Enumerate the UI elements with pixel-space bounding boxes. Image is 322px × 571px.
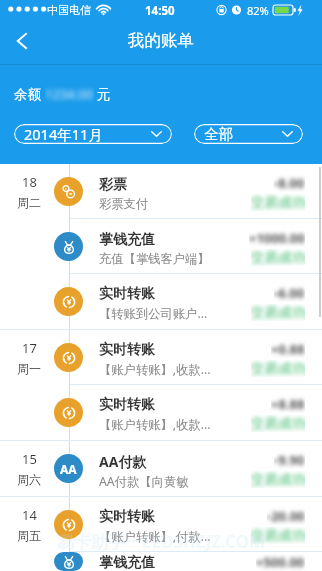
button[interactable]: 实时转账 — [0, 274, 322, 329]
staticText: 全部 — [204, 125, 233, 143]
staticText: 元 — [97, 86, 111, 103]
staticText: 我的账单 — [128, 30, 194, 51]
staticText: 14 — [22, 506, 37, 524]
staticText: 交易成功 — [251, 527, 305, 544]
staticText: 周一 — [17, 361, 41, 376]
staticText: 实时转账 — [99, 341, 155, 359]
button[interactable]: 彩票 — [0, 164, 322, 219]
staticText: 【转账到公司账户... — [99, 305, 208, 322]
staticText: 掌钱充值 — [99, 554, 155, 571]
button[interactable]: 实时转账 — [0, 497, 322, 552]
staticText: +1000.00 — [249, 229, 305, 247]
staticText: 彩票支付 — [99, 196, 149, 211]
button[interactable]: 掌钱充值 — [0, 219, 322, 274]
staticText: 余额 — [14, 86, 42, 103]
staticText: 实时转账 — [99, 396, 155, 414]
staticText: 周六 — [17, 472, 41, 487]
staticText: 掌钱充值 — [99, 231, 155, 249]
button[interactable]: AA — [0, 441, 322, 496]
staticText: 2014年11月 — [24, 124, 103, 144]
staticText: 交易成功 — [251, 360, 305, 377]
staticText: 周五 — [17, 528, 41, 543]
staticText: 交易成功 — [251, 194, 305, 211]
staticText: AA付款 — [99, 452, 147, 471]
staticText: +500.00 — [256, 553, 305, 571]
staticText: 实时转账 — [99, 508, 155, 526]
staticText: -6.00 — [274, 284, 305, 302]
staticText: -8.00 — [274, 174, 305, 192]
staticText: AA — [60, 461, 77, 477]
staticText: 18 — [22, 173, 37, 191]
staticText: -20.00 — [267, 507, 305, 525]
staticText: 实时转账 — [99, 285, 155, 303]
staticText: 充值【掌钱客户端】 — [99, 251, 210, 266]
staticText: 彩票 — [99, 176, 127, 194]
staticText: 【账户转账】,收款... — [99, 416, 211, 433]
staticText: 中国电信 — [47, 3, 91, 17]
staticText: +8.88 — [271, 395, 305, 413]
staticText: 交易成功 — [251, 304, 305, 321]
staticText: 【账户转账】,收款... — [99, 361, 211, 378]
button[interactable]: 全部 — [194, 124, 303, 144]
staticText: 82% — [247, 3, 269, 18]
staticText: 交易成功 — [251, 249, 305, 266]
staticText: +0.88 — [271, 340, 305, 358]
button[interactable]: 实时转账 — [0, 385, 322, 440]
button[interactable]: 实时转账 — [0, 330, 322, 385]
staticText: 1234.00 — [45, 85, 94, 103]
staticText: 交易成功 — [251, 415, 305, 432]
staticText: 15 — [22, 450, 37, 468]
button[interactable]: Back — [0, 20, 44, 61]
staticText: 【账户转账】,付款... — [99, 528, 211, 545]
staticText: 交易成功 — [251, 471, 305, 488]
staticText: 易卡助手一EEDSHZJZ.COM — [57, 530, 266, 553]
staticText: AA付款【向黄敏 — [99, 473, 189, 490]
staticText: 17 — [22, 339, 37, 357]
staticText: -9.90 — [274, 451, 305, 469]
button[interactable]: 2014年11月 — [14, 124, 172, 144]
button[interactable]: 掌钱充值 — [0, 552, 322, 571]
staticText: 周二 — [17, 195, 41, 210]
staticText: 14:50 — [145, 3, 175, 19]
